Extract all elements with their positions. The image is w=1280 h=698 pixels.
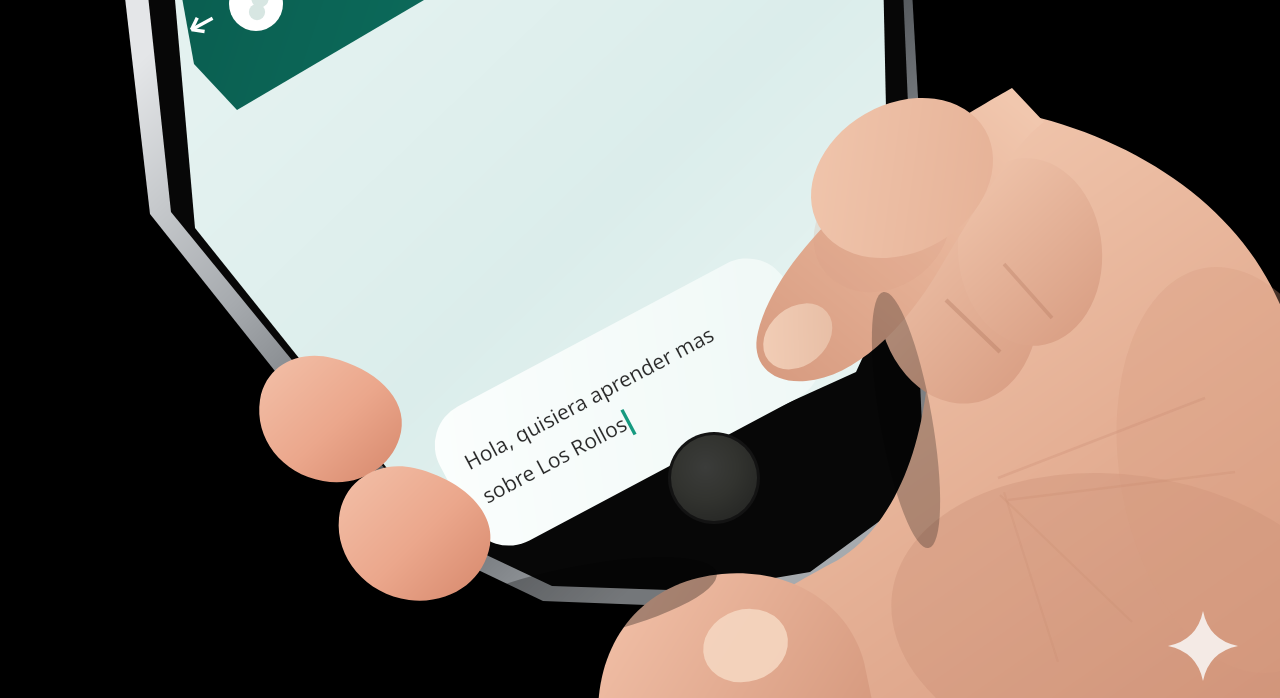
button[interactable]: Message input: Hola, quisiera aprender m… <box>470 305 790 455</box>
button[interactable]: Send <box>785 281 863 359</box>
button[interactable]: Back <box>170 0 214 34</box>
button[interactable]: Attach file <box>745 320 797 372</box>
button[interactable]: Contact profile <box>225 0 281 38</box>
button[interactable]: Home button <box>671 435 757 521</box>
